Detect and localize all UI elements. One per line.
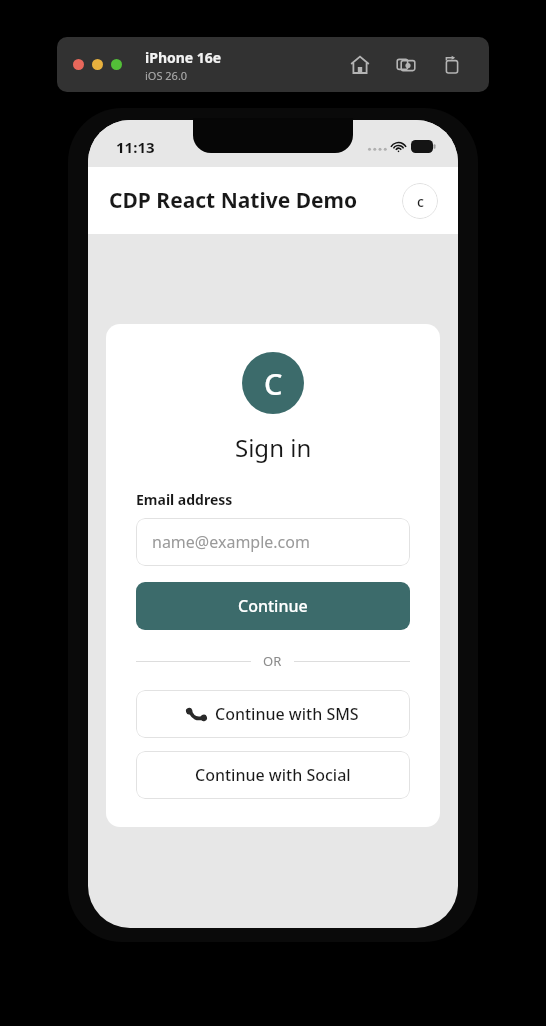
button[interactable]: Home <box>347 52 373 78</box>
staticText: Email address <box>136 490 233 509</box>
staticText: iOS 26.0 <box>145 68 188 83</box>
button[interactable]: Maximize <box>111 59 122 70</box>
staticText: 11:13 <box>116 137 155 157</box>
staticText: name@example.com <box>152 531 310 553</box>
button[interactable]: Continue <box>136 582 410 630</box>
button[interactable]: Continue with Social <box>136 751 410 799</box>
staticText: iPhone 16e <box>145 48 222 67</box>
button[interactable]: Rotate <box>439 52 465 78</box>
button[interactable]: Screenshot <box>393 52 419 78</box>
staticText: CDP React Native Demo <box>109 186 358 215</box>
button[interactable]: Close <box>73 59 84 70</box>
staticText: C <box>264 364 283 403</box>
staticText: Continue with SMS <box>215 703 359 725</box>
button[interactable]: Account <box>402 183 438 219</box>
staticText: c <box>417 192 424 211</box>
button[interactable]: Continue with SMS <box>136 690 410 738</box>
staticText: Continue <box>238 595 308 617</box>
staticText: Sign in <box>235 431 312 464</box>
button[interactable]: name@example.com <box>136 518 410 566</box>
button[interactable]: Minimize <box>92 59 103 70</box>
staticText: Continue with Social <box>195 764 351 786</box>
staticText: OR <box>263 652 282 670</box>
